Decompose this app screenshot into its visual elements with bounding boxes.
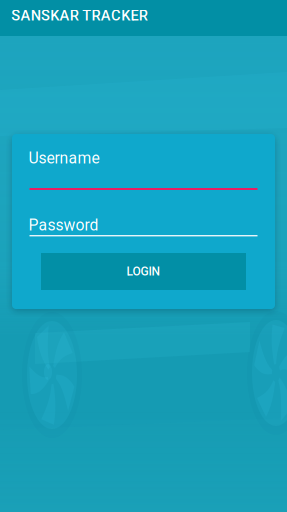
button[interactable]: LOGIN (41, 253, 246, 290)
staticText: SANSKAR TRACKER (11, 7, 148, 24)
staticText: Password (28, 216, 98, 234)
staticText: LOGIN (126, 264, 160, 279)
staticText: Username (28, 149, 99, 167)
